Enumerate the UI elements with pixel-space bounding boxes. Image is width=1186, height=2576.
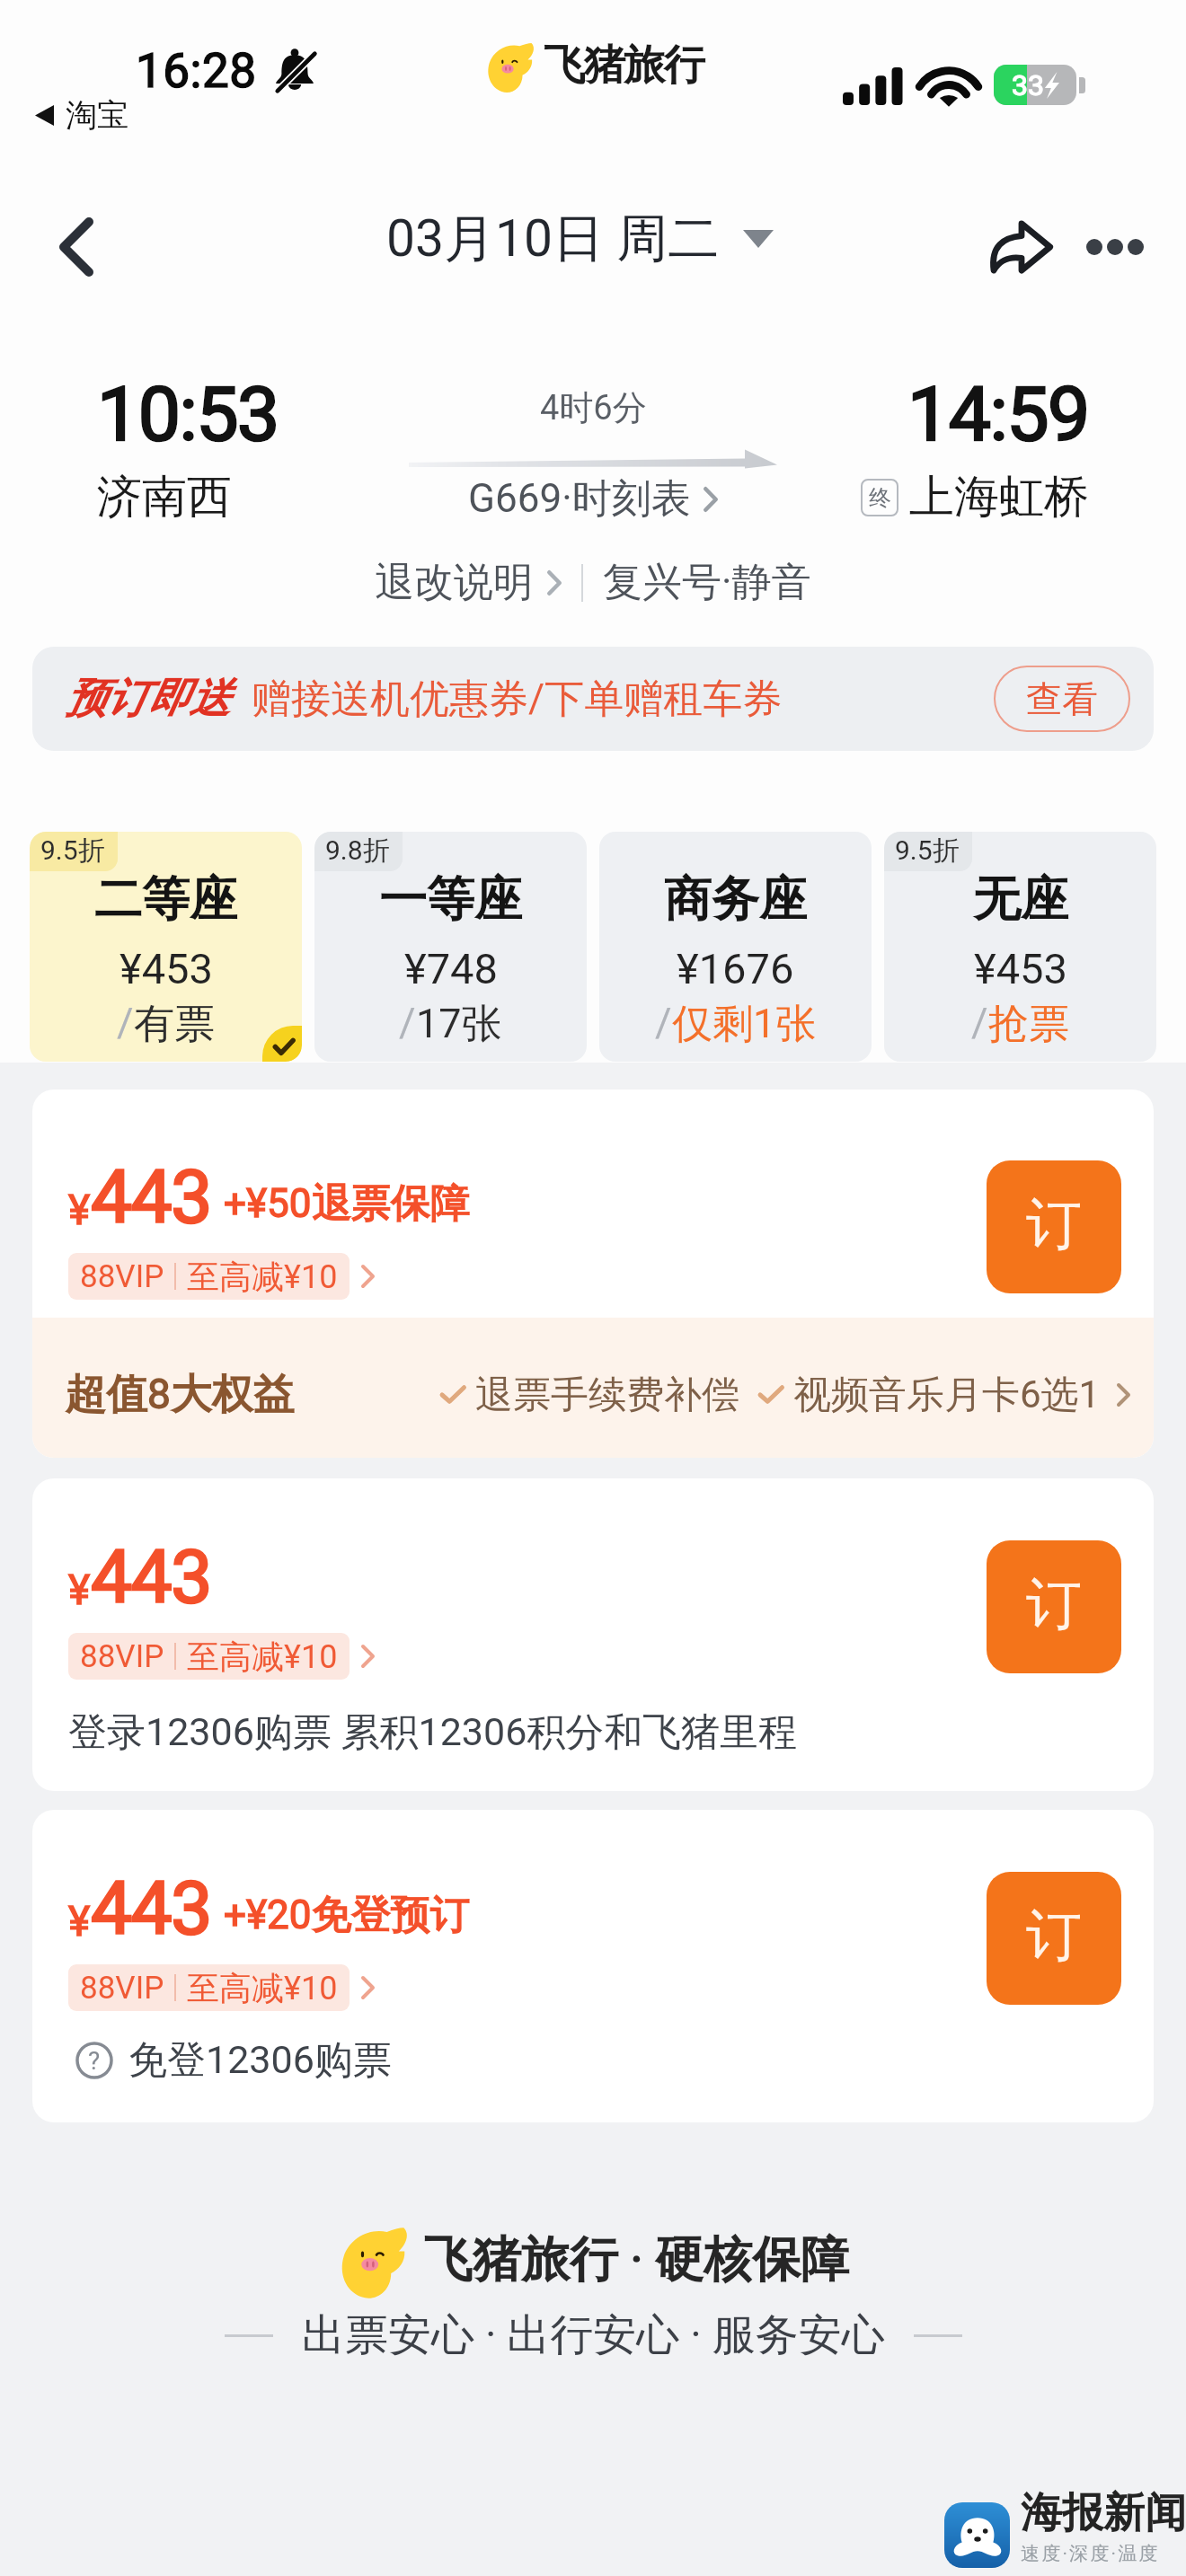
staticText: 飞猪旅行 <box>544 40 704 92</box>
staticText: 仅剩1张 <box>672 999 817 1050</box>
staticText: ¥1676 <box>677 944 794 993</box>
staticText: 9.5折 <box>895 834 960 868</box>
staticText: 33 <box>1012 68 1044 102</box>
button[interactable]: 商务座 <box>599 832 872 1062</box>
staticText: 淘宝 <box>66 95 128 135</box>
button[interactable]: 无座 <box>884 832 1156 1062</box>
staticText: ¥ <box>68 1566 91 1614</box>
staticText: 03月10日 周二 <box>386 207 720 271</box>
staticText: 443 <box>91 1154 211 1240</box>
staticText: 速度·深度·温度 <box>1021 2542 1160 2565</box>
staticText: ¥453 <box>974 944 1067 993</box>
staticText: 至高减¥10 <box>187 1968 338 2008</box>
button[interactable]: 订 <box>987 1540 1121 1673</box>
button[interactable]: 88VIP <box>68 1253 375 1300</box>
button[interactable]: 88VIP <box>68 1633 375 1680</box>
staticText: 二等座 <box>94 869 237 930</box>
staticText: 退改说明 <box>375 558 533 607</box>
staticText: 济南西 <box>97 469 232 525</box>
staticText: 订 <box>1026 1189 1082 1259</box>
staticText: / <box>399 999 416 1046</box>
staticText: 4时6分 <box>540 386 647 429</box>
staticText: 复兴号·静音 <box>603 558 811 607</box>
staticText: 至高减¥10 <box>187 1636 338 1677</box>
staticText: 预订即送 <box>65 673 230 725</box>
staticText: ¥ <box>68 1897 91 1945</box>
staticText: 免登12306购票 <box>128 2036 392 2085</box>
staticText: 443 <box>91 1866 211 1952</box>
button[interactable]: 淘宝 <box>35 95 128 135</box>
staticText: 10:53 <box>97 370 279 458</box>
staticText: 抢票 <box>988 999 1069 1050</box>
button[interactable]: More options <box>1068 200 1162 294</box>
button[interactable]: 退改说明 <box>375 558 562 607</box>
staticText: / <box>971 999 988 1046</box>
staticText: 飞猪旅行 · 硬核保障 <box>424 2229 849 2290</box>
button[interactable]: 预订即送 <box>32 647 1154 751</box>
staticText: 订 <box>1026 1901 1082 1971</box>
staticText: 88VIP <box>80 1970 164 2007</box>
button[interactable]: 超值8大权益 <box>32 1318 1154 1458</box>
staticText: 9.5折 <box>40 834 105 868</box>
staticText: 无座 <box>973 869 1068 930</box>
button[interactable]: 订 <box>987 1872 1121 2005</box>
staticText: ¥748 <box>404 944 498 993</box>
button[interactable]: Share <box>975 200 1068 294</box>
button[interactable]: 一等座 <box>314 832 587 1062</box>
staticText: / <box>117 999 134 1046</box>
staticText: 88VIP <box>80 1258 164 1295</box>
staticText: +¥50退票保障 <box>224 1179 470 1229</box>
staticText: 至高减¥10 <box>187 1257 338 1297</box>
staticText: 终 <box>869 484 891 512</box>
staticText: G669·时刻表 <box>468 474 691 524</box>
staticText: 88VIP <box>80 1638 164 1675</box>
button[interactable]: 88VIP <box>68 1964 375 2011</box>
staticText: / <box>655 999 672 1046</box>
staticText: 超值8大权益 <box>65 1369 295 1421</box>
staticText: 查看 <box>1026 676 1098 721</box>
staticText: 一等座 <box>379 869 522 930</box>
staticText: 海报新闻 <box>1021 2487 1186 2539</box>
staticText: 16:28 <box>136 43 257 99</box>
staticText: 退票手续费补偿 <box>475 1372 739 1419</box>
staticText: 视频音乐月卡6选1 <box>793 1372 1101 1419</box>
staticText: ¥453 <box>119 944 213 993</box>
staticText: 17张 <box>416 999 502 1050</box>
staticText: +¥20免登预订 <box>224 1891 470 1940</box>
staticText: 订 <box>1026 1569 1082 1639</box>
staticText: 出票安心 · 出行安心 · 服务安心 <box>302 2308 885 2362</box>
staticText: 443 <box>91 1534 211 1620</box>
staticText: 赠接送机优惠券/下单赠租车券 <box>252 675 783 724</box>
button[interactable]: 二等座 <box>30 832 302 1062</box>
button[interactable]: Back <box>31 202 121 292</box>
staticText: 登录12306购票 累积12306积分和飞猪里程 <box>68 1708 798 1757</box>
staticText: 有票 <box>134 999 215 1050</box>
button[interactable]: G669·时刻表 <box>468 474 718 524</box>
button[interactable]: 订 <box>987 1160 1121 1293</box>
staticText: 9.8折 <box>325 834 390 868</box>
staticText: 商务座 <box>664 869 807 930</box>
staticText: ¥ <box>68 1186 91 1234</box>
button[interactable]: 03月10日 周二 <box>386 207 774 271</box>
staticText: 上海虹桥 <box>909 469 1089 525</box>
staticText: 14:59 <box>907 370 1089 458</box>
staticText: ? <box>88 2046 101 2076</box>
